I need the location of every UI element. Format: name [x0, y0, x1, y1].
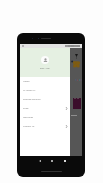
- staticText: Home: [23, 80, 30, 83]
- button[interactable]: Recents: [63, 159, 67, 163]
- button[interactable]: Back: [38, 159, 42, 163]
- button[interactable]: Guest | Login: [20, 48, 70, 77]
- staticText: Guest | Login: [40, 67, 50, 69]
- button[interactable]: Shop: [20, 104, 70, 113]
- button[interactable]: Home: [50, 159, 54, 163]
- staticText: IT About Us: [23, 89, 36, 92]
- staticText: Printing Services: [23, 98, 41, 101]
- button[interactable]: Home: [20, 77, 70, 86]
- button[interactable]: Contact Us: [20, 122, 70, 131]
- staticText: Machines: [23, 116, 34, 119]
- button[interactable]: Printing Services: [20, 95, 70, 104]
- staticText: Shop: [23, 107, 29, 110]
- button[interactable]: Machines: [20, 113, 70, 122]
- staticText: Contact Us: [23, 125, 35, 128]
- button[interactable]: IT About Us: [20, 86, 70, 95]
